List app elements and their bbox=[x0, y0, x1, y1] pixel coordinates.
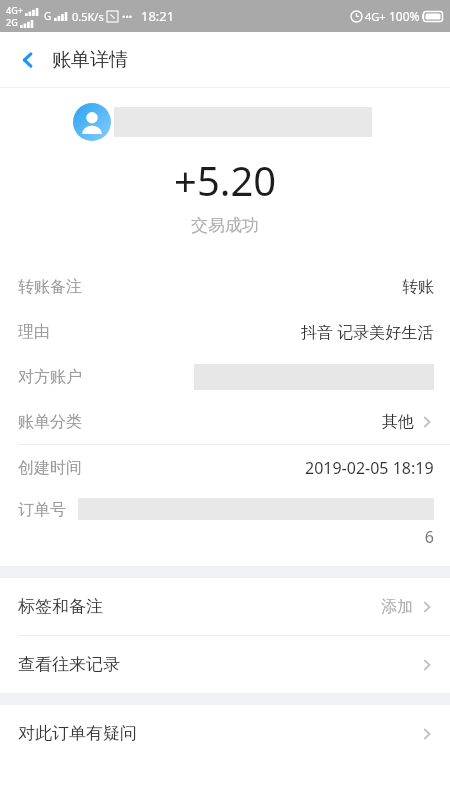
staticText: 账单详情 bbox=[52, 48, 128, 72]
staticText: 转账 bbox=[402, 277, 434, 297]
button[interactable]: 转账备注 bbox=[0, 264, 450, 309]
staticText: 4G+ bbox=[6, 4, 23, 16]
staticText: 2G bbox=[6, 16, 18, 28]
staticText: +5.20 bbox=[174, 153, 277, 207]
button[interactable]: 对方账户 bbox=[0, 354, 450, 399]
staticText: 18:21 bbox=[141, 7, 175, 25]
staticText: 订单号 bbox=[18, 500, 66, 520]
staticText: 对此订单有疑问 bbox=[18, 723, 137, 744]
staticText: 0.5K/s bbox=[72, 9, 104, 24]
staticText: 抖音 记录美好生活 bbox=[301, 321, 434, 343]
staticText: 6 bbox=[424, 526, 434, 548]
staticText: 创建时间 bbox=[18, 458, 82, 478]
staticText: 标签和备注 bbox=[18, 596, 103, 617]
staticText: 交易成功 bbox=[191, 215, 259, 236]
button[interactable]: 理由 bbox=[0, 309, 450, 354]
staticText: 其他 bbox=[382, 412, 414, 432]
staticText: 2019-02-05 18:19 bbox=[305, 457, 434, 479]
staticText: 查看往来记录 bbox=[18, 654, 120, 675]
staticText: 添加 bbox=[381, 597, 413, 617]
staticText: 4G+ bbox=[365, 9, 386, 24]
staticText: 转账备注 bbox=[18, 277, 82, 297]
staticText: G bbox=[44, 9, 52, 23]
button[interactable]: 创建时间 bbox=[0, 445, 450, 490]
staticText: 账单分类 bbox=[18, 412, 82, 432]
staticText: ••• bbox=[122, 10, 133, 22]
button[interactable]: 对此订单有疑问 bbox=[0, 705, 450, 762]
button[interactable]: 账单分类 bbox=[0, 399, 450, 444]
staticText: 理由 bbox=[18, 322, 50, 342]
staticText: 对方账户 bbox=[18, 367, 82, 387]
button[interactable]: 查看往来记录 bbox=[0, 636, 450, 693]
button[interactable]: 订单号 bbox=[0, 490, 450, 556]
button[interactable]: 标签和备注 bbox=[0, 578, 450, 635]
staticText: 100% bbox=[389, 8, 420, 24]
button[interactable]: Back bbox=[8, 40, 48, 80]
